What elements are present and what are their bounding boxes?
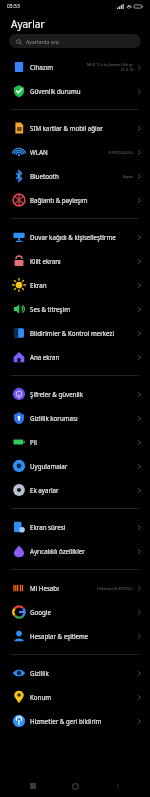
button[interactable]: Kilit ekranı bbox=[0, 249, 150, 273]
staticText: Ayarlarda ara bbox=[26, 38, 59, 45]
button[interactable]: SIM kartlar & mobil ağlar bbox=[0, 116, 150, 140]
staticText: Güvenlik durumu bbox=[30, 87, 136, 95]
staticText: Ayarlar bbox=[11, 17, 45, 31]
button[interactable]: Ses & titreşim bbox=[0, 297, 150, 321]
staticText: Ekran süresi bbox=[30, 523, 136, 531]
button[interactable]: Ekran bbox=[0, 273, 150, 297]
button[interactable]: Bağlantı & paylaşım bbox=[0, 188, 150, 212]
button[interactable]: Google bbox=[0, 600, 150, 624]
staticText: Bağlantı & paylaşım bbox=[30, 196, 136, 204]
button[interactable]: Cihazım bbox=[0, 55, 150, 79]
button[interactable]: Hizmetler & geri bildirim bbox=[0, 709, 150, 733]
button[interactable]: Bildirimler & Kontrol merkezi bbox=[0, 321, 150, 345]
button[interactable]: Bluetooth bbox=[0, 164, 150, 188]
button[interactable]: Gizlilik bbox=[0, 661, 150, 685]
staticText: Dekentya KURTOĞLU bbox=[97, 586, 133, 591]
button[interactable]: Ayarlarda ara bbox=[9, 34, 141, 48]
staticText: 21.4.14 bbox=[120, 67, 133, 72]
staticText: SIM kartlar & mobil ağlar bbox=[30, 124, 136, 132]
staticText: Hesaplar & eşitleme bbox=[30, 632, 136, 640]
staticText: WLAN bbox=[30, 148, 108, 156]
button[interactable]: Ayrıcalıklı özellikler bbox=[0, 539, 150, 563]
staticText: Google bbox=[30, 608, 136, 616]
button[interactable]: Şifreler & güvenlik bbox=[0, 382, 150, 406]
staticText: Bluetooth bbox=[30, 172, 122, 180]
staticText: Gizlilik koruması bbox=[30, 414, 136, 422]
staticText: Kilit ekranı bbox=[30, 257, 136, 265]
staticText: Ayrıcalıklı özellikler bbox=[30, 547, 136, 555]
staticText: Ekran bbox=[30, 281, 136, 289]
button[interactable]: Ekran süresi bbox=[0, 515, 150, 539]
staticText: Uygulamalar bbox=[30, 462, 136, 470]
staticText: Ana ekran bbox=[30, 353, 136, 361]
staticText: Kapalı bbox=[122, 174, 133, 179]
button[interactable]: Uygulamalar bbox=[0, 454, 150, 478]
button[interactable]: Konum bbox=[0, 685, 150, 709]
button[interactable]: WLAN bbox=[0, 140, 150, 164]
staticText: Ses & titreşim bbox=[30, 305, 136, 313]
button[interactable]: Home bbox=[65, 776, 85, 796]
staticText: Bildirimler & Kontrol merkezi bbox=[30, 329, 136, 337]
staticText: Cihazım bbox=[30, 63, 86, 71]
button[interactable]: Güvenlik durumu bbox=[0, 79, 150, 103]
staticText: SUPDOG24-5G bbox=[108, 150, 133, 155]
staticText: Gizlilik bbox=[30, 669, 136, 677]
button[interactable]: Duvar kağıdı & kişiselleştirme bbox=[0, 225, 150, 249]
staticText: Hizmetler & geri bildirim bbox=[30, 717, 136, 725]
button[interactable]: Back bbox=[108, 776, 128, 796]
button[interactable]: Hesaplar & eşitleme bbox=[0, 624, 150, 648]
staticText: 05:53 bbox=[7, 3, 20, 10]
button[interactable]: Pil bbox=[0, 430, 150, 454]
button[interactable]: Gizlilik koruması bbox=[0, 406, 150, 430]
staticText: Duvar kağıdı & kişiselleştirme bbox=[30, 233, 136, 241]
staticText: Konum bbox=[30, 693, 136, 701]
button[interactable]: Ana ekran bbox=[0, 345, 150, 369]
staticText: Pil bbox=[30, 438, 136, 446]
button[interactable]: Ek ayarlar bbox=[0, 478, 150, 502]
staticText: Mi Hesabı bbox=[30, 584, 97, 592]
staticText: MIUI 12.x by Jasmin-Hluf.gr bbox=[86, 62, 133, 67]
staticText: Şifreler & güvenlik bbox=[30, 390, 136, 398]
button[interactable]: Recents bbox=[23, 776, 43, 796]
staticText: Ek ayarlar bbox=[30, 486, 136, 494]
button[interactable]: Mi Hesabı bbox=[0, 576, 150, 600]
